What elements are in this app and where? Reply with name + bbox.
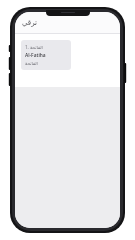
staticText: 1. الفاتحة [25,44,43,50]
staticText: Al-Fatiha [25,52,46,59]
staticText: الفاتحة [25,61,38,66]
staticText: ترقي [22,19,37,27]
button[interactable]: 1. الفاتحة [21,40,71,70]
